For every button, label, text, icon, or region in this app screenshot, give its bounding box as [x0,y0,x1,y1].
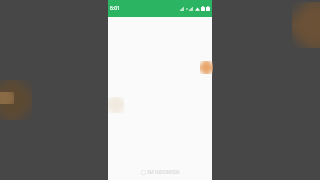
other: Wi-Fi [195,7,200,11]
other: Status [186,7,188,11]
button[interactable]: 3M INDONESIA [108,17,212,180]
other: Signal strength [180,7,185,11]
other: Battery [201,6,205,11]
staticText: 6:01 [110,5,120,12]
other: Battery [206,6,210,11]
staticText: 3M INDONESIA [147,169,180,175]
other: Signal strength [189,7,194,11]
